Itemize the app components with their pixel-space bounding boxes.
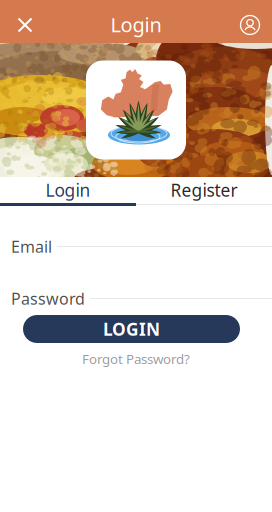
- staticText: Forgot Password?: [82, 350, 190, 368]
- button[interactable]: Register: [136, 177, 272, 206]
- staticText: Password: [11, 288, 85, 309]
- button[interactable]: Login: [0, 177, 136, 206]
- button[interactable]: Forgot Password?: [82, 350, 190, 368]
- staticText: Register: [170, 178, 237, 201]
- button[interactable]: Close: [8, 7, 42, 43]
- staticText: Email: [11, 236, 52, 257]
- staticText: Login: [110, 11, 161, 38]
- button[interactable]: Account: [233, 7, 267, 43]
- button[interactable]: LOGIN: [23, 315, 240, 343]
- staticText: LOGIN: [103, 317, 160, 340]
- staticText: Login: [45, 178, 90, 201]
